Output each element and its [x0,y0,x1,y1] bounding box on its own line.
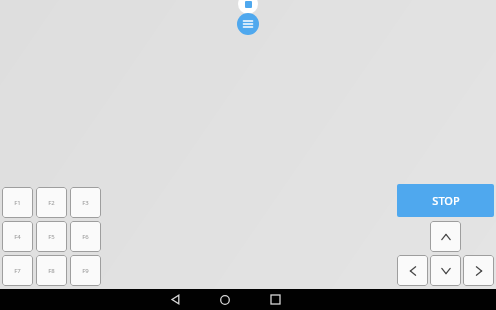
button[interactable]: STOP [397,184,494,217]
staticText: F4 [14,233,21,241]
button[interactable]: Back [150,289,200,310]
staticText: F2 [48,199,55,207]
staticText: STOP [432,193,460,208]
button[interactable]: F4 [2,221,33,252]
button[interactable]: F7 [2,255,33,286]
staticText: F3 [82,199,89,207]
button[interactable]: Menu [237,13,259,35]
button[interactable]: F2 [36,187,67,218]
button[interactable]: F8 [36,255,67,286]
button[interactable]: Right [463,255,494,286]
button[interactable]: F9 [70,255,101,286]
button[interactable]: Up [430,221,461,252]
button[interactable]: Home [200,289,250,310]
button[interactable]: F5 [36,221,67,252]
staticText: F1 [14,199,21,207]
button[interactable]: Left [397,255,428,286]
staticText: F9 [82,267,89,275]
staticText: F6 [82,233,89,241]
button[interactable]: Down [430,255,461,286]
button[interactable]: F1 [2,187,33,218]
staticText: F7 [14,267,21,275]
button[interactable]: Connection indicator [238,0,258,14]
button[interactable]: Recent apps [250,289,300,310]
staticText: F5 [48,233,55,241]
staticText: F8 [48,267,55,275]
button[interactable]: F3 [70,187,101,218]
button[interactable]: F6 [70,221,101,252]
